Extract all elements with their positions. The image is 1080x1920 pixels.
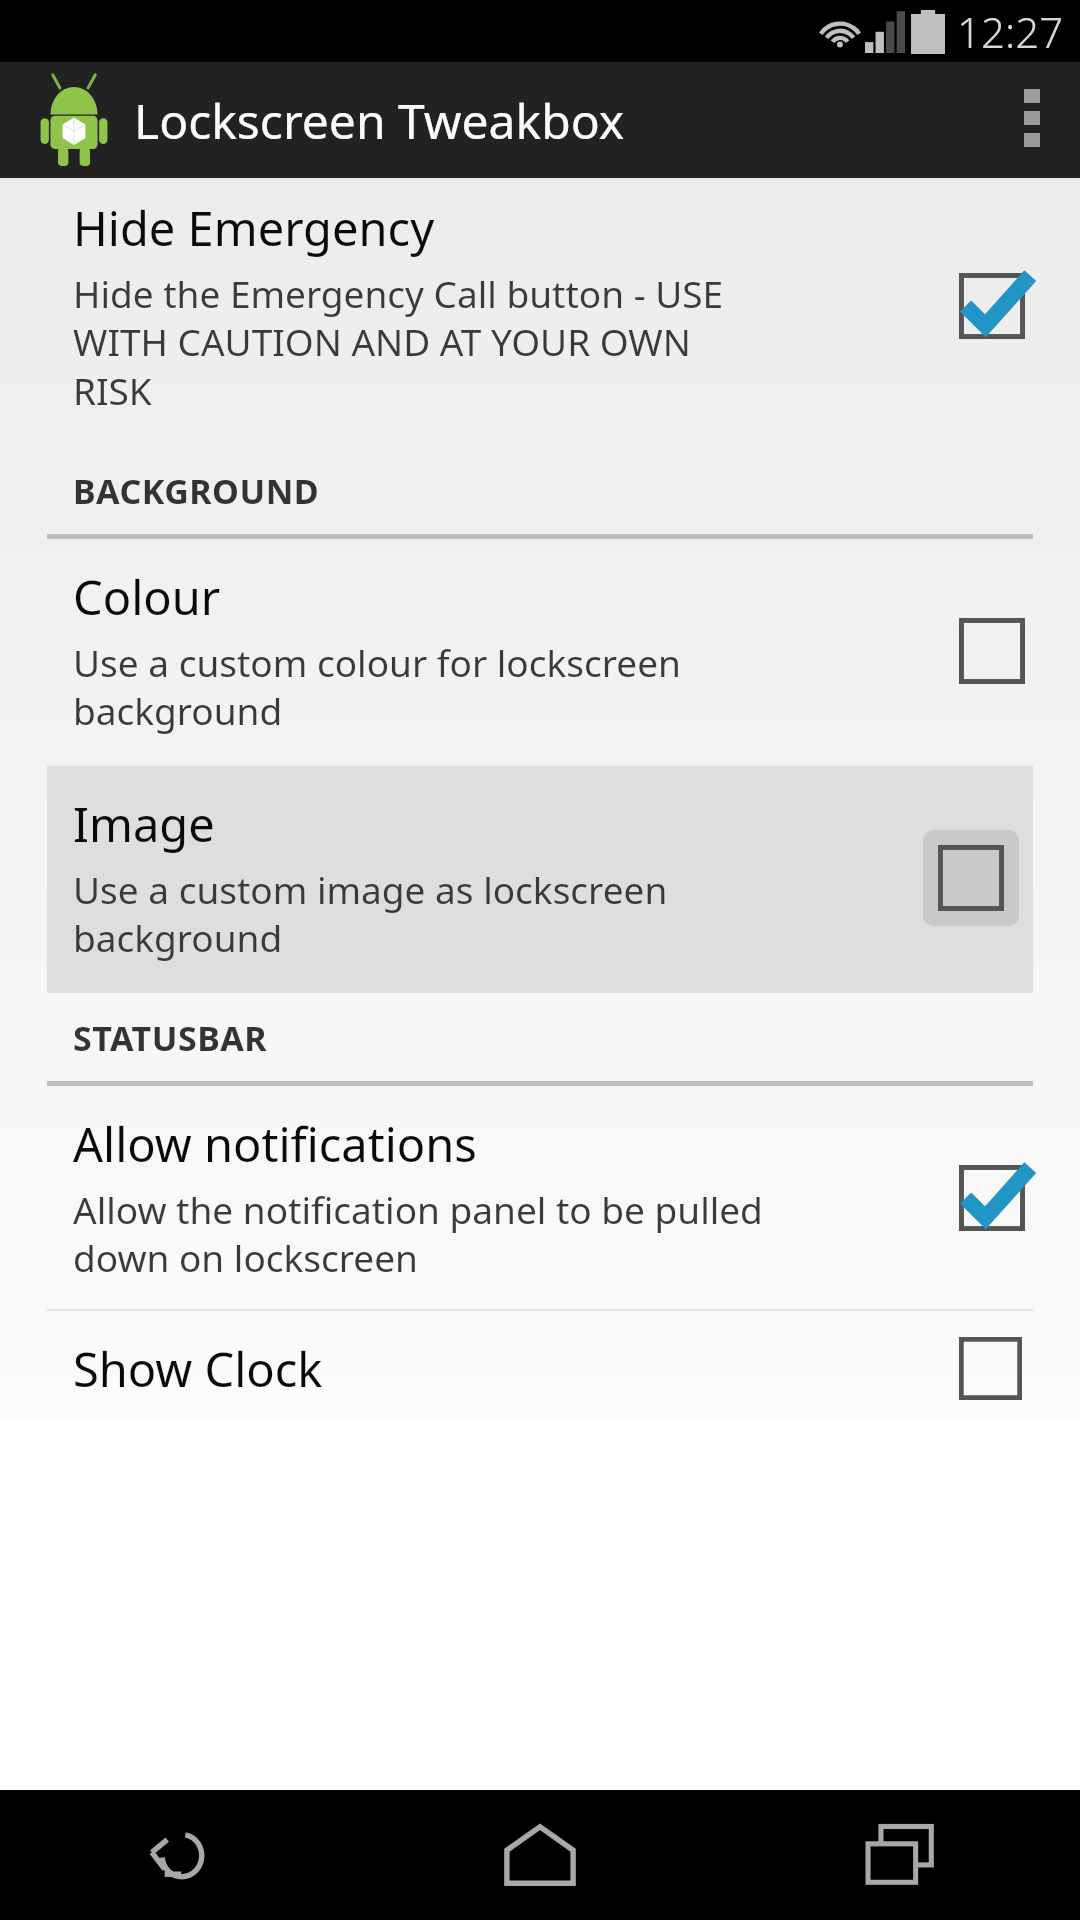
staticText: Use a custom image as lockscreen backgro… — [73, 864, 668, 963]
button[interactable]: Recent apps — [720, 1790, 1080, 1920]
button[interactable]: Allow notifications — [0, 1086, 1080, 1309]
staticText: Show Clock — [73, 1337, 323, 1400]
staticText: 12:27 — [957, 3, 1064, 60]
staticText: Allow notifications — [73, 1112, 477, 1176]
button[interactable]: Home — [360, 1790, 720, 1920]
button[interactable]: Show Clock — [0, 1311, 1080, 1420]
staticText: BACKGROUND — [73, 468, 320, 514]
staticText: Hide the Emergency Call button - USE WIT… — [73, 268, 724, 416]
button[interactable]: Colour — [0, 539, 1080, 766]
staticText: Hide Emergency — [73, 196, 435, 260]
button[interactable]: Unchecked — [923, 830, 1019, 926]
button[interactable]: More options — [984, 62, 1080, 178]
button[interactable]: Hide Emergency — [0, 178, 1080, 446]
button[interactable]: Image — [47, 766, 1033, 993]
button[interactable]: Unchecked — [944, 603, 1040, 699]
staticText: Colour — [73, 565, 221, 629]
staticText: Use a custom colour for lockscreen backg… — [73, 637, 681, 736]
staticText: STATUSBAR — [73, 1015, 268, 1061]
button[interactable]: Checked — [944, 258, 1040, 354]
button[interactable]: Checked — [944, 1150, 1040, 1246]
staticText: Image — [73, 792, 215, 856]
button[interactable]: Unchecked — [944, 1337, 1040, 1400]
staticText: Allow the notification panel to be pulle… — [73, 1184, 763, 1283]
button[interactable]: Back — [0, 1790, 360, 1920]
staticText: Lockscreen Tweakbox — [134, 88, 625, 153]
